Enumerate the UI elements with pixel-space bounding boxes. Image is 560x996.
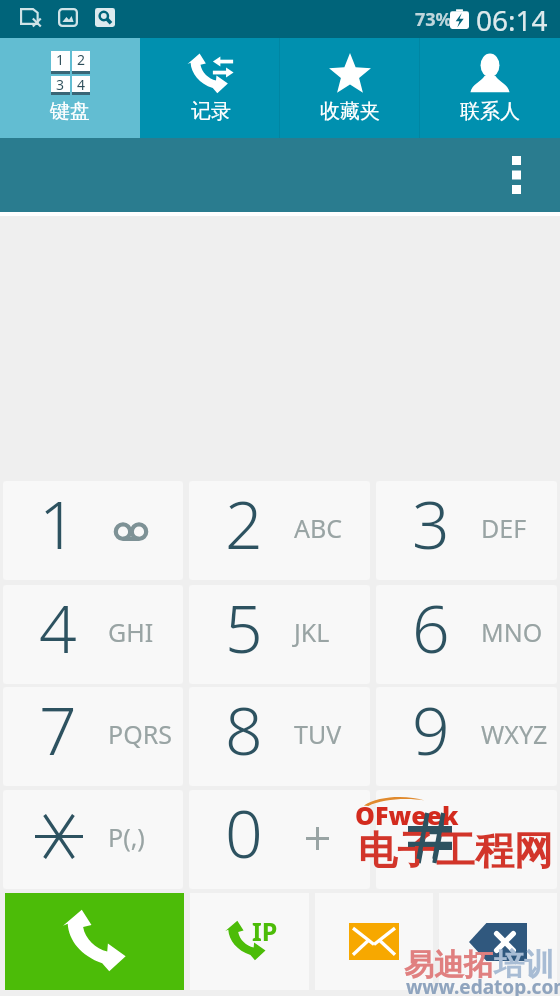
button[interactable]: Delete	[439, 893, 557, 990]
staticText: WXYZ	[481, 717, 548, 751]
staticText: 1	[39, 481, 77, 568]
staticText: 电子工程网	[358, 826, 553, 875]
staticText: 2	[77, 50, 86, 69]
staticText: MNO	[481, 615, 543, 649]
button[interactable]: 5	[189, 585, 370, 684]
button[interactable]: 9	[376, 687, 557, 786]
staticText: ABC	[294, 511, 343, 545]
button[interactable]: 3	[376, 481, 557, 580]
staticText: PQRS	[108, 717, 172, 751]
button[interactable]: P(,)	[3, 790, 183, 889]
staticText: TUV	[294, 717, 342, 751]
button[interactable]: IP call	[190, 893, 309, 990]
staticText: JKL	[294, 615, 330, 649]
button[interactable]: 1	[0, 38, 140, 138]
button[interactable]: 7	[3, 687, 183, 786]
staticText: 收藏夹	[320, 99, 380, 124]
staticText: DEF	[481, 511, 527, 545]
staticText: 培训	[494, 946, 554, 984]
button[interactable]: 收藏夹	[280, 38, 420, 138]
staticText: 2	[225, 481, 263, 568]
button[interactable]: More options	[492, 138, 542, 212]
staticText: P(,)	[108, 820, 145, 854]
staticText: 5	[225, 585, 263, 672]
button[interactable]: 4	[3, 585, 183, 684]
staticText: 1	[56, 50, 65, 69]
staticText: 3	[412, 481, 450, 568]
staticText: 6	[412, 585, 450, 672]
button[interactable]: 8	[189, 687, 370, 786]
staticText: 4	[39, 585, 77, 672]
staticText: 73%	[415, 7, 452, 32]
staticText: 06:14	[476, 1, 548, 39]
staticText: GHI	[108, 615, 154, 649]
staticText: 9	[412, 687, 450, 774]
staticText: www.edatop.com	[406, 974, 560, 996]
button[interactable]: 6	[376, 585, 557, 684]
staticText: 记录	[191, 99, 231, 124]
staticText: 4	[77, 75, 86, 94]
staticText: 7	[39, 687, 77, 774]
staticText: 键盘	[50, 99, 90, 124]
staticText: 易迪拓	[404, 946, 494, 984]
button[interactable]	[376, 790, 557, 889]
button[interactable]: 0	[189, 790, 370, 889]
staticText: 联系人	[460, 99, 520, 124]
staticText: OFweek	[355, 798, 459, 832]
button[interactable]: 2	[189, 481, 370, 580]
staticText: 8	[225, 687, 263, 774]
staticText: 3	[56, 75, 65, 94]
button[interactable]: Call	[5, 893, 184, 990]
button[interactable]: 记录	[140, 38, 280, 138]
button[interactable]: 1	[3, 481, 183, 580]
staticText: 0	[225, 790, 263, 877]
staticText: IP	[252, 914, 278, 948]
button[interactable]: 联系人	[420, 38, 560, 138]
button[interactable]: Message	[315, 893, 433, 990]
